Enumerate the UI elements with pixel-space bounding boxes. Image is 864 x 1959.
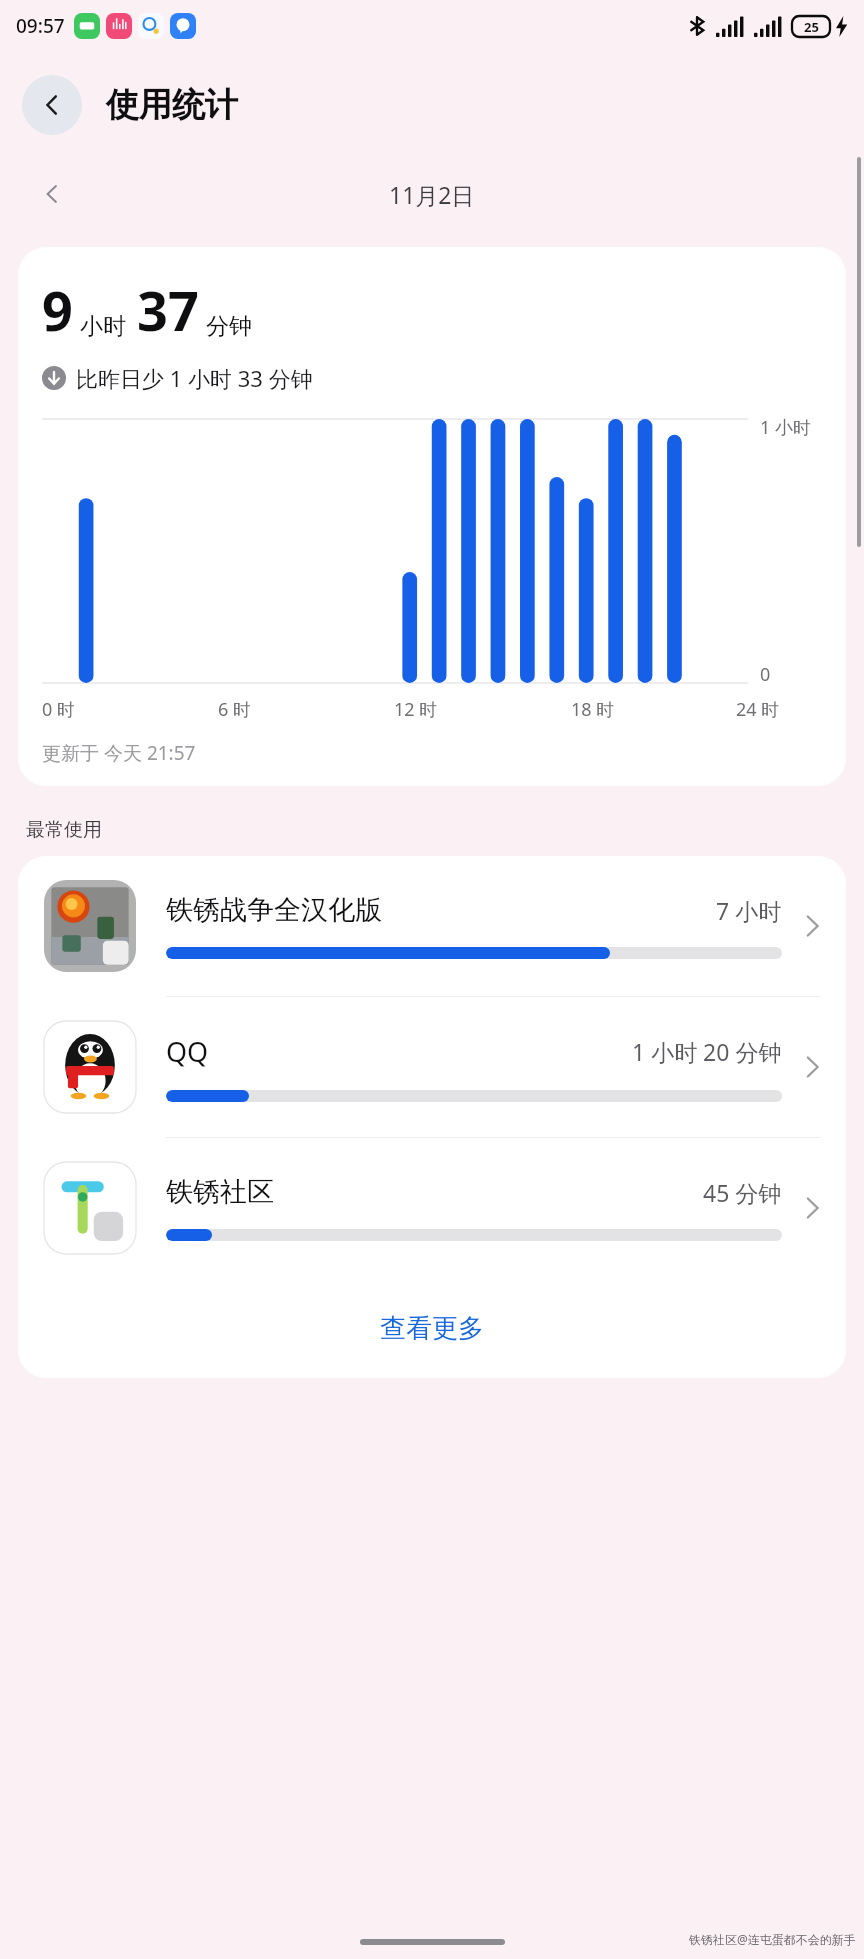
button[interactable]: QQ	[18, 997, 846, 1137]
staticText: 铁锈社区@连屯蛋都不会的新手	[689, 1931, 856, 1947]
button[interactable]: Back	[22, 75, 82, 135]
staticText: 使用统计	[106, 84, 238, 126]
button[interactable]: Previous day	[30, 172, 74, 216]
staticText: 25	[804, 18, 819, 36]
staticText: 1 小时 20 分钟	[632, 1036, 782, 1067]
staticText: 查看更多	[380, 1312, 484, 1345]
staticText: 0	[760, 662, 771, 687]
staticText: 11月2日	[389, 179, 475, 210]
staticText: 09:57	[16, 13, 65, 39]
staticText: 18 时	[571, 697, 615, 722]
staticText: 12 时	[394, 697, 438, 722]
staticText: 6 时	[218, 697, 251, 722]
staticText: QQ	[166, 1033, 209, 1070]
staticText: 9	[42, 273, 73, 347]
staticText: 1 小时	[760, 415, 811, 440]
staticText: 小时	[80, 312, 126, 341]
staticText: 更新于 今天 21:57	[42, 740, 196, 766]
button[interactable]: 查看更多	[18, 1278, 846, 1378]
staticText: 铁锈社区	[166, 1175, 274, 1209]
staticText: 7 小时	[716, 895, 782, 926]
staticText: 分钟	[206, 312, 252, 341]
staticText: 铁锈战争全汉化版	[166, 893, 382, 927]
staticText: 24 时	[736, 697, 780, 722]
staticText: 比昨日少 1 小时 33 分钟	[76, 363, 313, 393]
staticText: 0 时	[42, 697, 75, 722]
button[interactable]: 铁锈战争全汉化版	[18, 856, 846, 996]
staticText: 37	[137, 273, 199, 347]
button[interactable]: 铁锈社区	[18, 1138, 846, 1278]
staticText: 45 分钟	[703, 1177, 782, 1208]
staticText: 最常使用	[26, 818, 102, 842]
